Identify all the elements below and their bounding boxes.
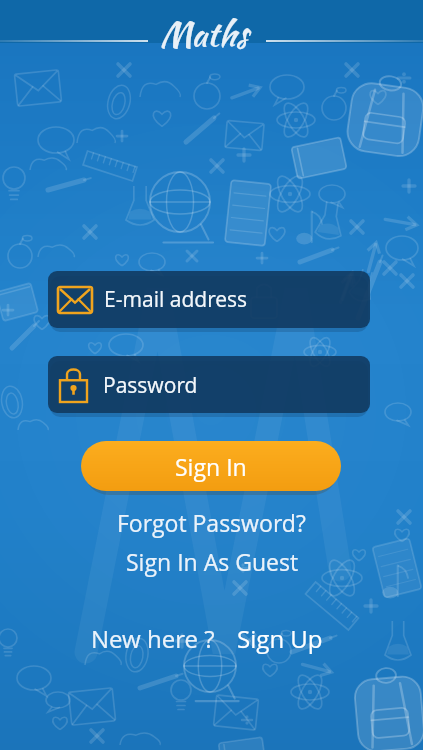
button[interactable]: E-mail address [48,271,370,328]
staticText: Sign In [175,451,247,482]
staticText: Password [103,371,198,400]
staticText: Forgot Password? [117,507,306,538]
button[interactable]: Sign In As Guest [126,546,298,577]
staticText: Sign In As Guest [126,546,298,577]
button[interactable]: Forgot Password? [117,507,306,538]
button[interactable]: Sign Up [237,622,323,655]
button[interactable]: Password [48,356,370,413]
staticText: E-mail address [104,285,248,314]
staticText: New here ? [91,622,215,655]
staticText: Sign Up [237,622,323,655]
button[interactable]: Sign In [81,441,341,491]
staticText: Maths [160,9,248,58]
